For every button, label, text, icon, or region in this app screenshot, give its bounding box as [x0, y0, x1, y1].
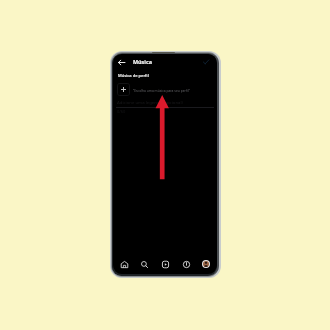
- button[interactable]: Search: [137, 257, 151, 271]
- staticText: Música de perfil: [118, 73, 149, 79]
- staticText: Música: [133, 58, 152, 65]
- button[interactable]: “Escolha uma música para seu perfil”: [117, 83, 213, 96]
- button[interactable]: Home: [117, 257, 131, 271]
- staticText: “Escolha uma música para seu perfil”: [133, 88, 190, 92]
- button[interactable]: Back: [116, 57, 127, 68]
- button[interactable]: Reels: [158, 257, 172, 271]
- button[interactable]: Done: [200, 56, 211, 67]
- staticText: Adicione uma legenda (opcional): [117, 99, 183, 105]
- button[interactable]: Activity: [179, 257, 193, 271]
- button[interactable]: Profile: [199, 257, 213, 271]
- staticText: 0/60: [117, 109, 126, 114]
